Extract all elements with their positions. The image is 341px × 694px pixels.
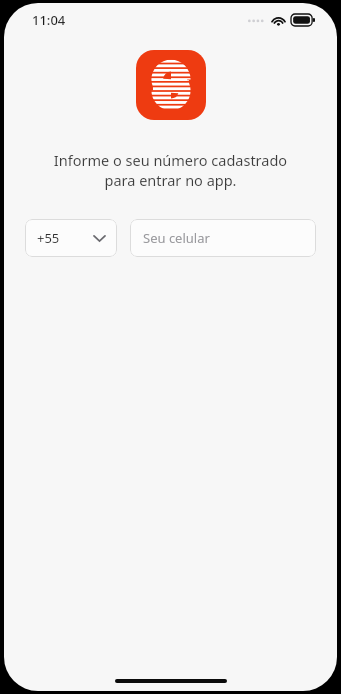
staticText: Seu celular xyxy=(143,229,210,247)
button[interactable]: Seu celular xyxy=(130,219,316,257)
staticText: 11:04 xyxy=(32,11,66,29)
staticText: +55 xyxy=(37,229,60,247)
other: App logo xyxy=(136,50,206,120)
button[interactable]: +55 xyxy=(25,219,117,257)
other: Select country code xyxy=(94,235,105,242)
staticText: Informe o seu número cadastrado para ent… xyxy=(26,150,315,191)
